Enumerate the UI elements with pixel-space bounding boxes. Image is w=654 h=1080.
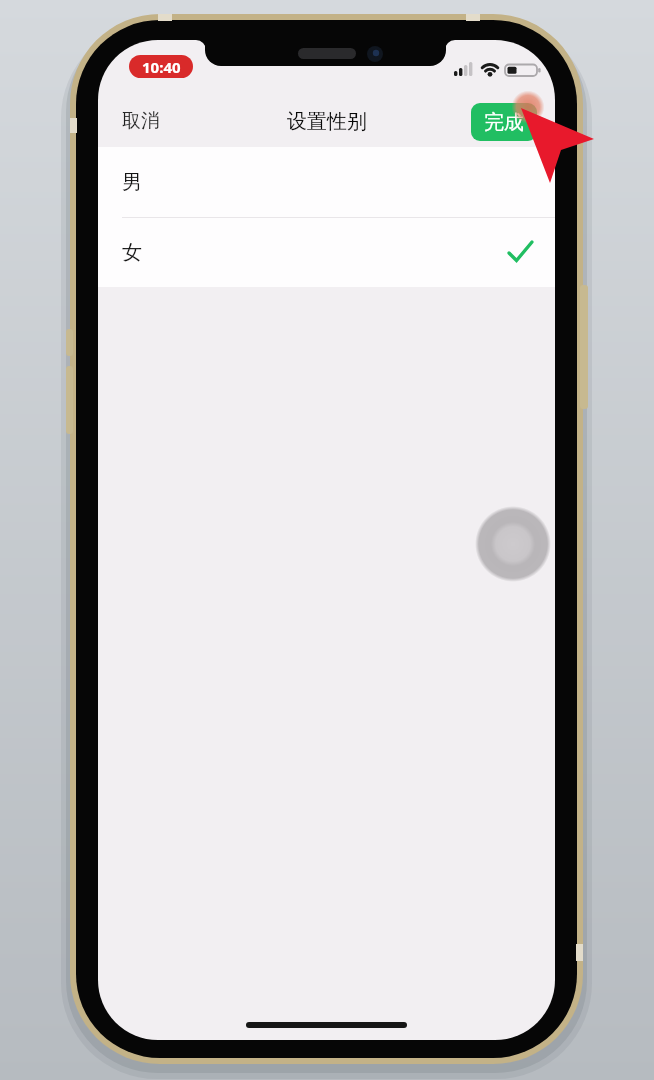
staticText: 10:40 xyxy=(142,57,181,77)
staticText: 男 xyxy=(122,170,142,195)
staticText: 完成 xyxy=(484,110,524,135)
staticText: 取消 xyxy=(122,109,160,133)
button[interactable]: 10:40 xyxy=(129,55,193,78)
staticText: 女 xyxy=(122,240,142,265)
staticText: 设置性别 xyxy=(287,109,367,134)
button[interactable]: 完成 xyxy=(471,103,537,141)
button[interactable]: 女 xyxy=(98,218,555,287)
button[interactable]: 取消 xyxy=(122,109,160,133)
button[interactable]: 男 xyxy=(98,147,555,217)
